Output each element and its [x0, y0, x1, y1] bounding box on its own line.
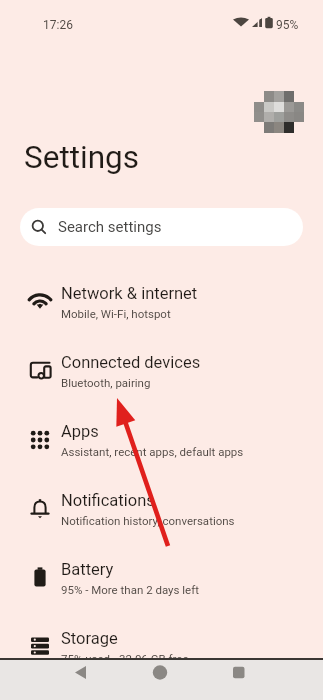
- staticText: Assistant, recent apps, default apps: [61, 445, 244, 458]
- button[interactable]: [227, 661, 251, 685]
- staticText: Notification history, conversations: [61, 514, 235, 527]
- button[interactable]: [148, 661, 172, 685]
- button[interactable]: Storage: [0, 612, 323, 681]
- button[interactable]: [69, 661, 93, 685]
- staticText: Search settings: [58, 218, 162, 236]
- staticText: 95%: [276, 18, 299, 32]
- button[interactable]: Network & internet: [0, 267, 323, 336]
- staticText: Mobile, Wi-Fi, hotspot: [61, 307, 171, 320]
- staticText: Network & internet: [61, 284, 198, 303]
- button[interactable]: Battery: [0, 543, 323, 612]
- staticText: Bluetooth, pairing: [61, 376, 151, 389]
- button[interactable]: Search settings: [20, 208, 303, 246]
- staticText: Storage: [61, 629, 118, 648]
- button[interactable]: Connected devices: [0, 336, 323, 405]
- staticText: 75% used - 32.06 GB free: [61, 652, 189, 665]
- button[interactable]: Apps: [0, 405, 323, 474]
- staticText: Battery: [61, 560, 114, 579]
- staticText: 95% - More than 2 days left: [61, 583, 199, 596]
- button[interactable]: Notifications: [0, 474, 323, 543]
- staticText: Apps: [61, 422, 99, 441]
- staticText: 17:26: [43, 18, 73, 32]
- staticText: Connected devices: [61, 353, 201, 372]
- staticText: Settings: [24, 139, 140, 176]
- staticText: Notifications: [61, 491, 155, 510]
